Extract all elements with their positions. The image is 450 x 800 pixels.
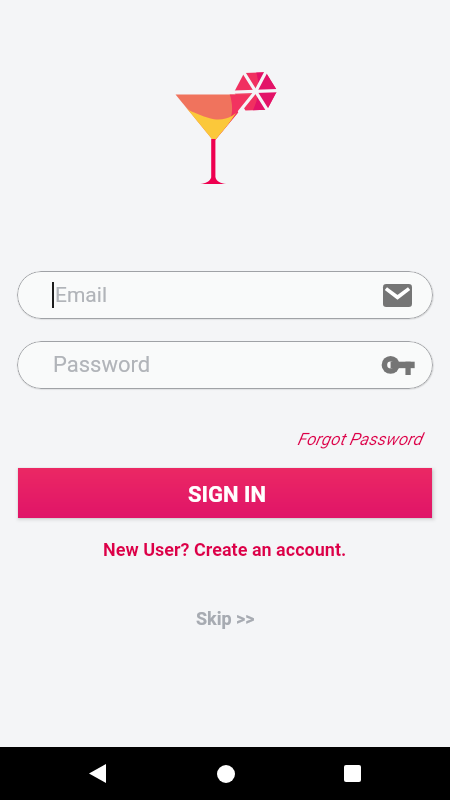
button[interactable]: SIGN IN <box>18 468 432 518</box>
button[interactable]: Password <box>17 341 433 389</box>
staticText: Password <box>53 352 151 378</box>
staticText: Email <box>55 283 107 308</box>
button[interactable]: New User? Create an account. <box>75 536 375 562</box>
button[interactable]: Recent apps <box>331 752 374 795</box>
button[interactable]: Email <box>17 271 433 319</box>
button[interactable]: Forgot Password <box>276 424 422 454</box>
button[interactable]: Home <box>204 752 247 795</box>
staticText: New User? Create an account. <box>103 539 347 560</box>
staticText: SIGN IN <box>188 482 266 508</box>
staticText: Forgot Password <box>297 429 422 449</box>
staticText: Skip >> <box>196 608 255 629</box>
button[interactable]: Back <box>76 752 119 795</box>
button[interactable]: Skip >> <box>185 604 265 632</box>
